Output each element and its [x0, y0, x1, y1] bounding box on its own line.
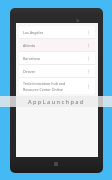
staticText: Resource Center Online: [23, 87, 63, 92]
staticText: Denver: [23, 69, 36, 74]
button[interactable]: More options: [84, 41, 93, 50]
button[interactable]: Home: [54, 162, 58, 166]
button[interactable]: More options: [84, 67, 93, 76]
staticText: Tesla innovation hub and: [23, 81, 66, 86]
button[interactable]: More options: [84, 28, 93, 37]
button[interactable]: Los Angeles: [19, 26, 95, 38]
button[interactable]: More options: [84, 54, 93, 63]
button[interactable]: Atlanta: [19, 39, 95, 51]
button[interactable]: Denver: [19, 65, 95, 77]
button[interactable]: More options: [84, 82, 93, 91]
staticText: Barcelona: [23, 56, 40, 61]
button[interactable]: Tesla innovation hub and: [19, 78, 95, 94]
staticText: Los Angeles: [23, 30, 44, 35]
button[interactable]: Barcelona: [19, 52, 95, 64]
staticText: A p p L a u n c h p a d: [28, 98, 84, 105]
staticText: Atlanta: [23, 43, 36, 48]
